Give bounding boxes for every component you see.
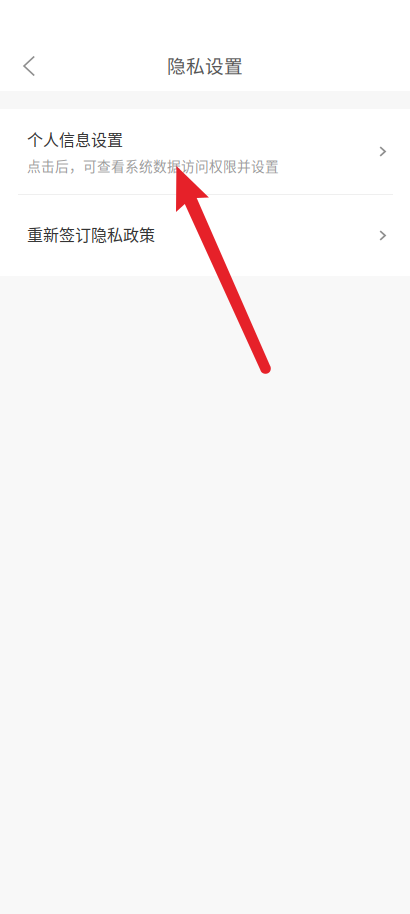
button[interactable]: 个人信息设置 (0, 109, 410, 194)
staticText: 重新签订隐私政策 (27, 222, 155, 246)
button[interactable]: Back (6, 42, 52, 88)
staticText: 点击后，可查看系统数据访问权限并设置 (27, 156, 279, 175)
button[interactable]: 重新签订隐私政策 (0, 195, 410, 276)
staticText: 个人信息设置 (27, 127, 123, 151)
staticText: 隐私设置 (167, 51, 243, 78)
